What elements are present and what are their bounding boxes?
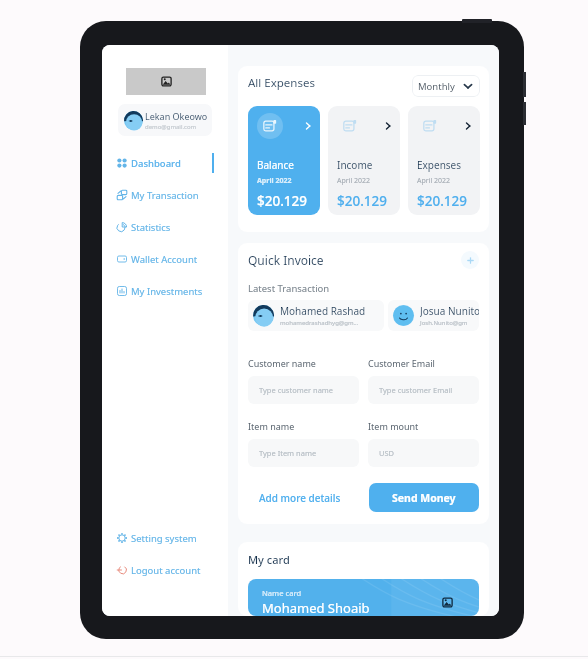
button[interactable]: Mohamed Rashad	[248, 300, 384, 331]
button[interactable]: Add more details	[248, 483, 352, 512]
staticText: Send Money	[392, 491, 456, 505]
staticText: USD	[379, 448, 395, 458]
button[interactable]: Type customer Email	[368, 376, 479, 404]
button[interactable]: Lekan Okeowo	[118, 104, 212, 136]
staticText: mohamedrashadhyg@gm...	[280, 319, 359, 327]
staticText: Type Item name	[259, 448, 317, 458]
staticText: Lekan Okeowo	[145, 110, 208, 122]
button[interactable]: Type customer name	[248, 376, 359, 404]
button[interactable]: Add invoice	[461, 251, 479, 269]
staticText: Customer name	[248, 357, 316, 369]
button[interactable]: Monthly	[412, 75, 480, 97]
staticText: $20.129	[337, 192, 388, 210]
staticText: April 2022	[417, 176, 451, 186]
staticText: Balance	[257, 158, 294, 172]
staticText: Add more details	[259, 491, 341, 505]
button[interactable]: Send Money	[369, 483, 479, 512]
button[interactable]: Income	[328, 106, 400, 215]
staticText: Dashboard	[131, 157, 181, 170]
staticText: Josua Nunito	[420, 304, 479, 318]
button[interactable]: USD	[368, 439, 479, 467]
staticText: My Investments	[131, 285, 203, 298]
staticText: Item mount	[368, 420, 419, 432]
staticText: Type customer Email	[379, 385, 453, 395]
staticText: April 2022	[337, 176, 371, 186]
staticText: Josh.Nunito@gm	[420, 319, 468, 327]
staticText: My card	[248, 552, 290, 567]
staticText: Statistics	[131, 221, 171, 234]
staticText: Name card	[262, 588, 302, 598]
staticText: Expenses	[417, 158, 462, 172]
staticText: Mohamed Shoaib	[262, 599, 370, 616]
button[interactable]: Setting system	[102, 522, 228, 554]
staticText: $20.129	[257, 192, 308, 210]
button[interactable]: Balance	[248, 106, 320, 215]
staticText: Latest Transaction	[248, 282, 330, 295]
staticText: Logout account	[131, 564, 201, 577]
button[interactable]: Josua Nunito	[388, 300, 479, 331]
button[interactable]: Wallet Account	[102, 243, 228, 275]
staticText: Monthly	[418, 80, 455, 93]
button[interactable]: My Transaction	[102, 179, 228, 211]
staticText: Wallet Account	[131, 253, 198, 266]
staticText: Income	[337, 158, 373, 172]
staticText: $20.129	[417, 192, 468, 210]
button[interactable]: Name card	[248, 579, 479, 616]
staticText: All Expenses	[248, 75, 315, 91]
staticText: My Transaction	[131, 189, 199, 202]
staticText: Quick Invoice	[248, 252, 324, 268]
button[interactable]: Type Item name	[248, 439, 359, 467]
button[interactable]: Dashboard	[102, 147, 228, 179]
button[interactable]: My Investments	[102, 275, 228, 307]
button[interactable]: Logout account	[102, 554, 228, 586]
staticText: Setting system	[131, 532, 197, 545]
button[interactable]: Statistics	[102, 211, 228, 243]
staticText: Customer Email	[368, 357, 435, 369]
staticText: Mohamed Rashad	[280, 304, 366, 318]
staticText: April 2022	[257, 176, 292, 186]
button[interactable]: Expenses	[408, 106, 480, 215]
staticText: Type customer name	[259, 385, 334, 395]
staticText: demo@gmail.com	[145, 123, 197, 131]
staticText: Item name	[248, 420, 295, 432]
